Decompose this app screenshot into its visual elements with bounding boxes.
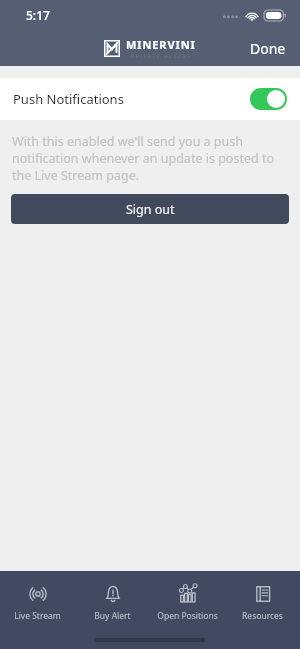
staticText: With this enabled we'll send you a push … [12, 133, 288, 184]
staticText: Done [250, 39, 286, 58]
staticText: Buy Alert [94, 610, 131, 622]
button[interactable]: Open Positions [150, 571, 225, 631]
staticText: MINERVINI [126, 37, 196, 52]
button[interactable]: Buy Alert [75, 571, 150, 631]
button[interactable]: Sign out [11, 194, 289, 224]
staticText: PRIVATE ACCESS [131, 53, 192, 60]
staticText: Live Stream [14, 610, 61, 622]
staticText: Push Notifications [13, 90, 124, 108]
staticText: 5:17 [26, 7, 50, 23]
button[interactable]: Push Notifications [0, 78, 300, 120]
button[interactable]: Live Stream [0, 571, 75, 631]
staticText: Sign out [126, 201, 175, 218]
button[interactable]: Toggle push notifications [250, 88, 287, 110]
staticText: Resources [242, 610, 283, 622]
button[interactable]: Resources [225, 571, 300, 631]
staticText: Open Positions [157, 610, 218, 622]
button[interactable]: Done [236, 33, 300, 64]
